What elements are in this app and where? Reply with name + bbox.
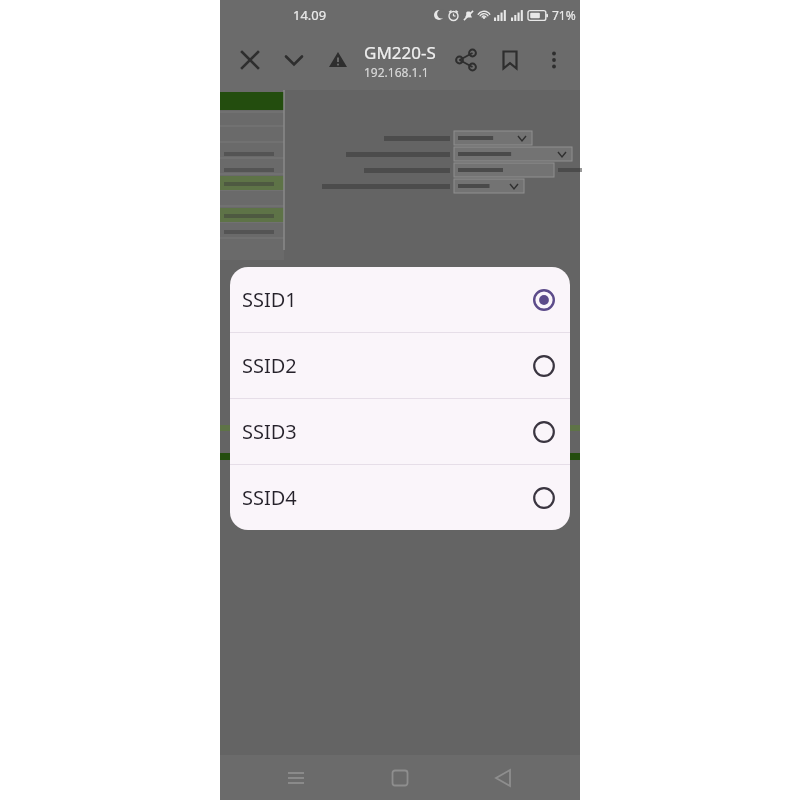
button[interactable]: SSID4 bbox=[230, 465, 570, 530]
staticText: SSID1 bbox=[242, 286, 532, 313]
button[interactable]: Security warning bbox=[316, 38, 360, 82]
staticText: SSID4 bbox=[242, 484, 532, 511]
staticText: SSID2 bbox=[242, 352, 532, 379]
button[interactable]: Expand bbox=[272, 38, 316, 82]
button[interactable]: SSID1 bbox=[230, 267, 570, 332]
button[interactable]: Bookmark bbox=[488, 38, 532, 82]
button[interactable]: More options bbox=[532, 38, 576, 82]
button[interactable]: Recent apps bbox=[268, 755, 324, 800]
button[interactable]: Close bbox=[228, 38, 272, 82]
button[interactable]: Share bbox=[444, 38, 488, 82]
button[interactable]: Home bbox=[372, 755, 428, 800]
button[interactable]: Back bbox=[476, 755, 532, 800]
staticText: SSID3 bbox=[242, 418, 532, 445]
button[interactable]: SSID2 bbox=[230, 333, 570, 398]
button[interactable]: SSID3 bbox=[230, 399, 570, 464]
staticText: GM220-S bbox=[364, 41, 436, 64]
staticText: 192.168.1.1 bbox=[364, 64, 429, 80]
staticText: 14.09 bbox=[293, 6, 327, 24]
staticText: 71% bbox=[552, 7, 576, 23]
